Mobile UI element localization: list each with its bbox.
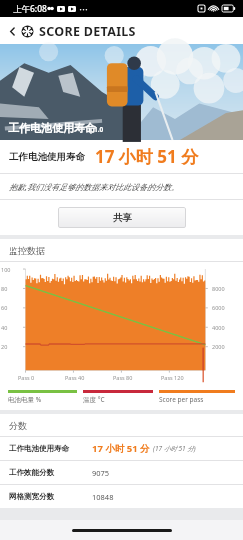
staticText: Pass 40 (65, 374, 85, 381)
staticText: 共享 (113, 212, 132, 224)
staticText: 抱歉,我们没有足够的数据来对比此设备的分数。 (9, 181, 180, 192)
staticText: Pass 80 (113, 374, 133, 381)
staticText: Score per pass (159, 395, 235, 404)
staticText: 80 (1, 285, 8, 292)
staticText: 监控数据 (9, 245, 45, 256)
staticText: (17 小时 51 分) (153, 444, 196, 453)
staticText: 工作电池使用寿命 (8, 121, 96, 135)
staticText: Pass 0 (18, 374, 35, 381)
staticText: 电池电量 % (8, 395, 83, 404)
staticText: 40 (1, 324, 8, 331)
staticText: 1.0 (94, 125, 104, 134)
staticText: 分数 (9, 420, 27, 431)
staticText: 6000 (212, 304, 225, 311)
button[interactable]: 网格测宽分数 (0, 485, 243, 508)
staticText: 2000 (212, 343, 225, 350)
staticText: 20 (1, 343, 8, 350)
staticText: Pass 120 (161, 374, 184, 381)
button[interactable]: 共享 (58, 207, 186, 228)
staticText: 4000 (212, 324, 225, 331)
staticText: 工作电池使用寿命 (9, 444, 92, 453)
button[interactable]: Back (3, 22, 21, 40)
staticText: 17 小时 51 分 (95, 145, 199, 168)
staticText: SCORE DETAILS (39, 23, 136, 40)
staticText: 上午6:08 (13, 3, 47, 15)
staticText: 60 (1, 304, 8, 311)
button[interactable]: 工作效能分数 (0, 461, 243, 484)
staticText: 工作电池使用寿命 (9, 151, 85, 163)
staticText: 网格测宽分数 (9, 492, 92, 501)
staticText: 100 (1, 266, 11, 273)
staticText: 9075 (92, 468, 110, 478)
staticText: 温度 °C (83, 395, 159, 404)
staticText: 17 小时 51 分 (92, 442, 150, 455)
staticText: 工作效能分数 (9, 468, 92, 477)
staticText: 10848 (92, 492, 114, 502)
button[interactable]: 工作电池使用寿命 (0, 437, 243, 460)
staticText: 8000 (212, 285, 225, 292)
